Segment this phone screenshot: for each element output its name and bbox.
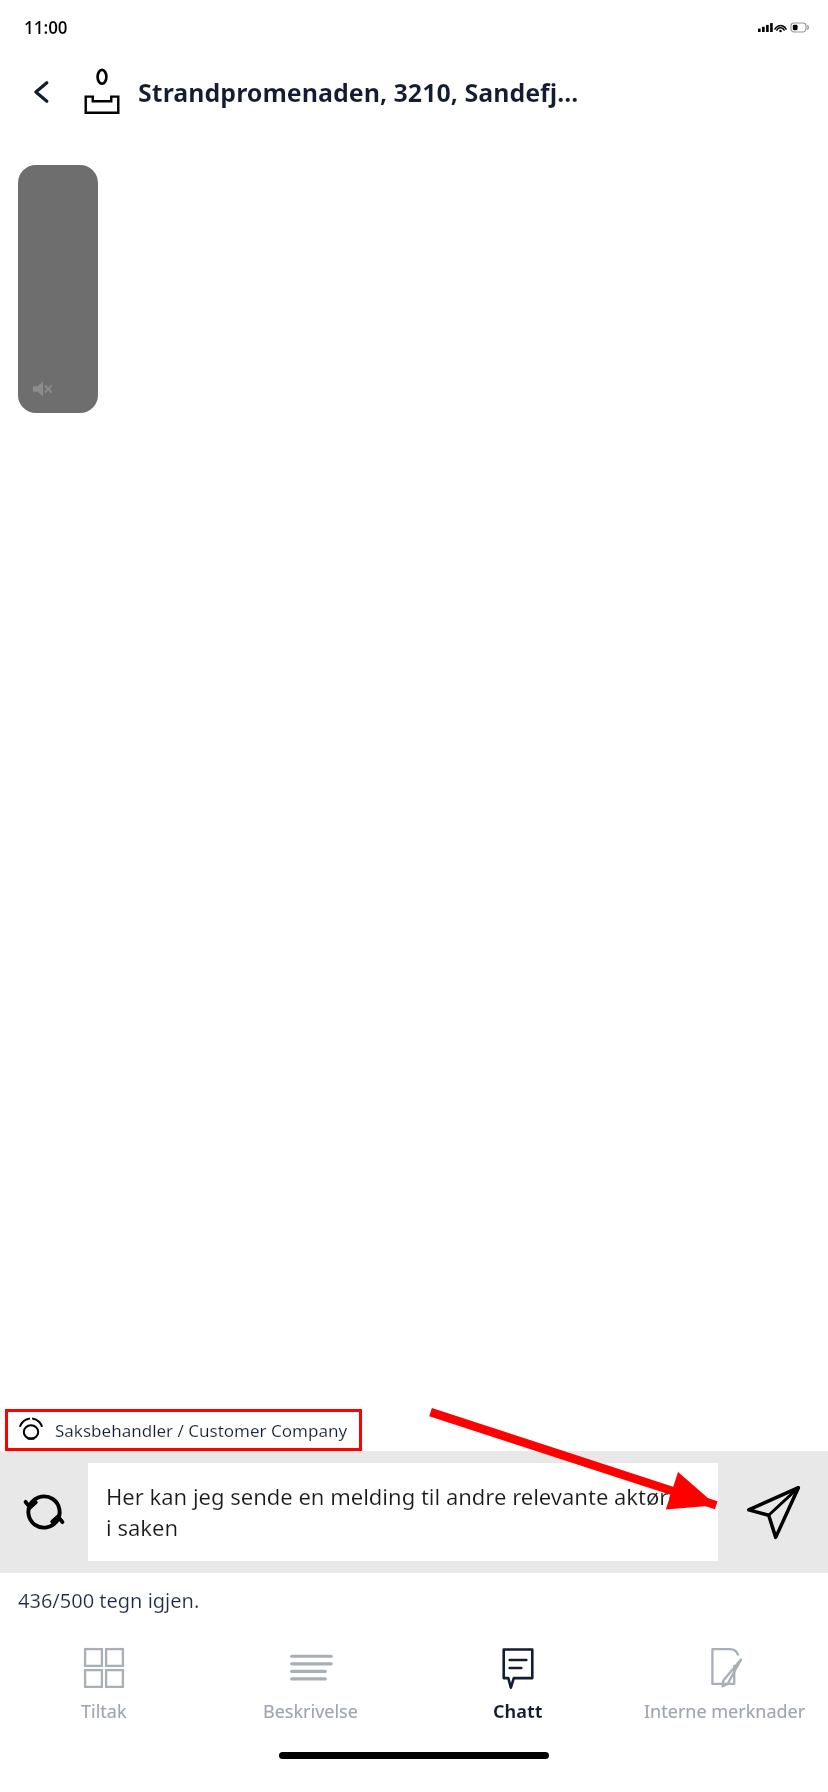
button[interactable]: Video xyxy=(18,165,98,413)
staticText: Strandpromenaden, 3210, Sandefj... xyxy=(138,75,579,109)
button[interactable]: Back xyxy=(18,68,66,116)
button[interactable]: Beskrivelse xyxy=(207,1624,414,1746)
button[interactable]: Her kan jeg sende en melding til andre r… xyxy=(106,1481,700,1543)
button[interactable]: Resend xyxy=(0,1468,88,1556)
staticText: Chatt xyxy=(493,1699,543,1724)
button[interactable]: Tiltak xyxy=(0,1624,207,1746)
button[interactable]: Chatt xyxy=(414,1624,621,1746)
staticText: Saksbehandler / Customer Company xyxy=(55,1419,348,1442)
staticText: 11:00 xyxy=(24,16,68,39)
button[interactable]: Interne merknader xyxy=(621,1624,828,1746)
staticText: Beskrivelse xyxy=(263,1699,358,1724)
staticText: 436/500 tegn igjen. xyxy=(18,1587,200,1614)
button[interactable]: Send xyxy=(718,1472,828,1552)
staticText: Her kan jeg sende en melding til andre r… xyxy=(106,1481,700,1543)
staticText: Tiltak xyxy=(81,1699,127,1724)
staticText: Interne merknader xyxy=(644,1699,806,1724)
button[interactable]: Saksbehandler / Customer Company xyxy=(19,1418,348,1442)
